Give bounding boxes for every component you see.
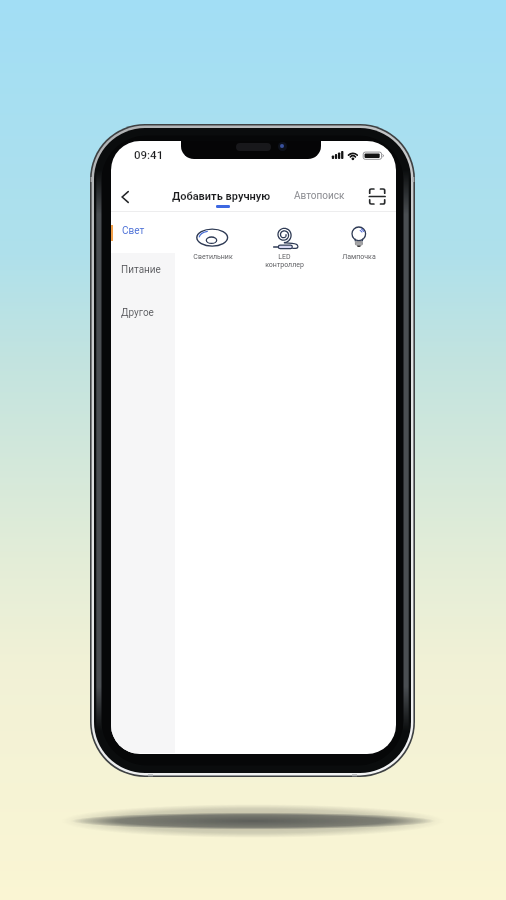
button[interactable]: Питание (111, 252, 175, 294)
button[interactable]: Светильник (184, 217, 242, 271)
button[interactable]: Добавить вручную (166, 188, 276, 204)
staticText: Лампочка (342, 253, 376, 261)
staticText: Свет (122, 225, 145, 237)
staticText: Светильник (193, 253, 233, 261)
button[interactable]: Автопоиск (289, 188, 349, 204)
staticText: Питание (121, 264, 161, 276)
button[interactable]: Свет (111, 212, 175, 253)
staticText: Добавить вручную (172, 190, 271, 203)
staticText: LED контроллер (265, 253, 304, 269)
staticText: 09:41 (134, 148, 164, 161)
button[interactable]: LED контроллер (256, 217, 312, 271)
button[interactable] (363, 182, 391, 210)
button[interactable]: Другое (111, 294, 175, 336)
button[interactable]: Лампочка (331, 217, 387, 271)
button[interactable] (117, 185, 139, 209)
staticText: Автопоиск (294, 190, 345, 202)
staticText: Другое (121, 307, 154, 319)
